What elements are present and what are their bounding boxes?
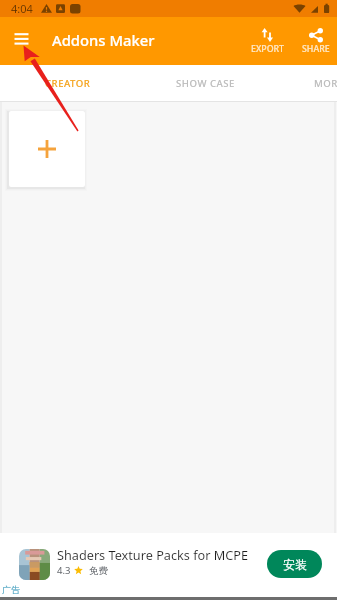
staticText: Addons Maker [52, 30, 155, 50]
button[interactable]: SHOW CASE [132, 65, 278, 101]
staticText: SHOW CASE [176, 77, 235, 90]
staticText: Shaders Texture Packs for MCPE [57, 546, 249, 563]
staticText: EXPORT [251, 43, 285, 55]
button[interactable]: 安装 [267, 550, 322, 578]
button[interactable]: EXPORT [242, 17, 293, 65]
button[interactable]: CREATOR [0, 65, 132, 101]
staticText: 4:04 [11, 1, 33, 16]
staticText: 4.3 [57, 564, 71, 577]
button[interactable]: Create new addon [9, 111, 85, 187]
staticText: 广告 [2, 584, 20, 595]
button[interactable]: Open navigation menu [6, 25, 38, 57]
staticText: CREATOR [45, 77, 91, 90]
button[interactable]: SHARE [295, 17, 337, 65]
staticText: MORE [314, 77, 337, 90]
staticText: SHARE [302, 43, 330, 55]
staticText: 免费 [89, 565, 108, 577]
button[interactable]: MORE [278, 65, 337, 101]
staticText: 安装 [283, 557, 307, 572]
